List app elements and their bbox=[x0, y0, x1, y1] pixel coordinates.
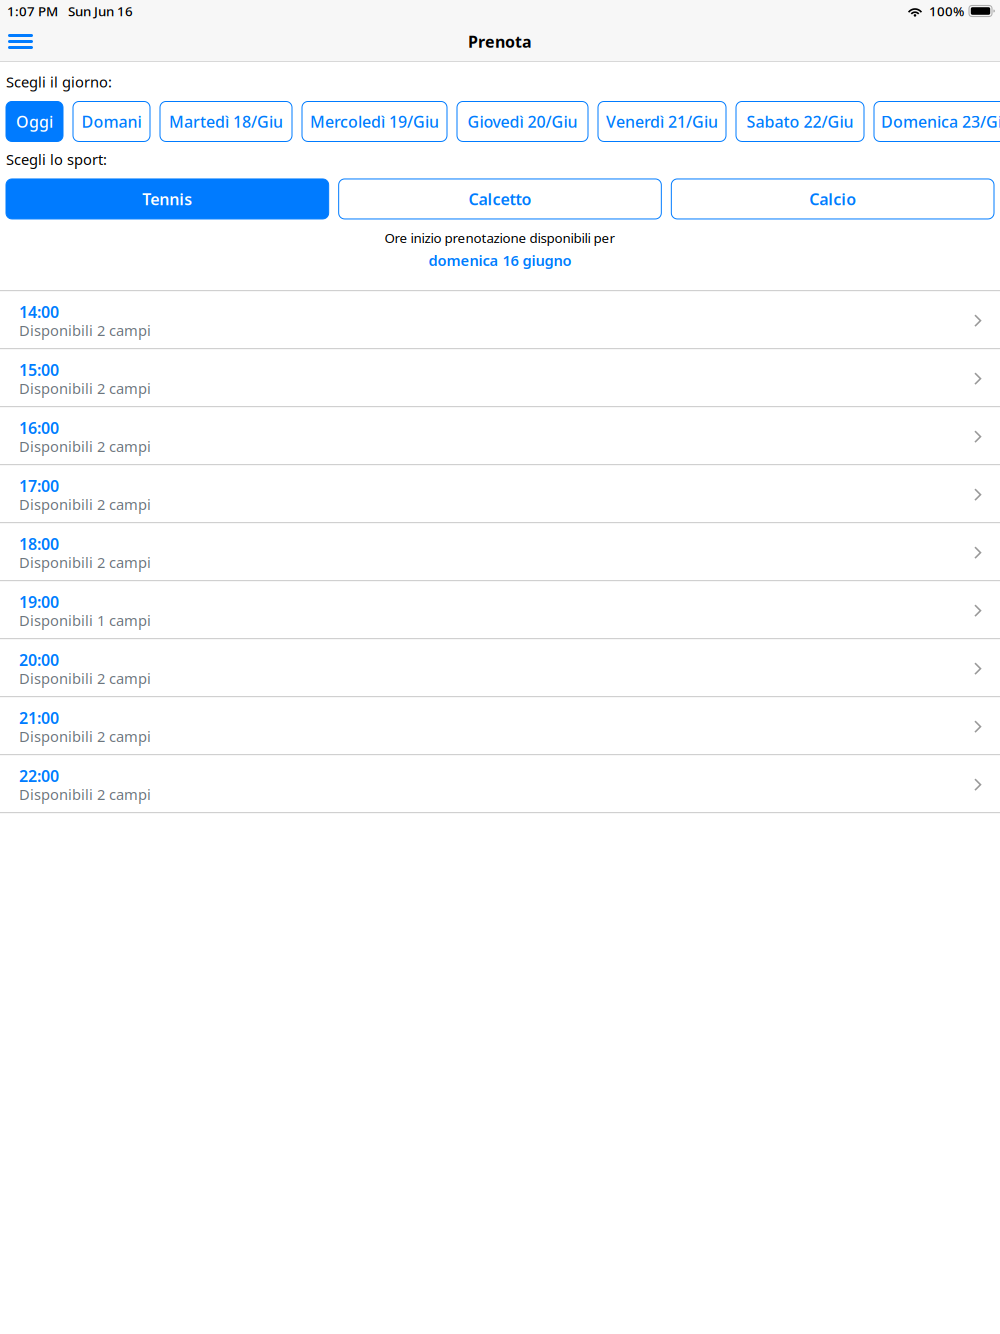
button[interactable]: Calcetto bbox=[339, 179, 661, 219]
button[interactable]: Calcio bbox=[671, 179, 994, 219]
button[interactable]: Venerdì 21/Giu bbox=[598, 101, 726, 141]
staticText: Mercoledì 19/Giu bbox=[310, 111, 439, 132]
button[interactable]: Oggi bbox=[6, 101, 63, 141]
button[interactable]: Giovedì 20/Giu bbox=[457, 101, 588, 141]
staticText: 1:07 PM bbox=[7, 2, 58, 20]
button[interactable]: 17:00 bbox=[0, 465, 1000, 523]
staticText: Scegli lo sport: bbox=[6, 149, 107, 169]
staticText: Disponibili 2 campi bbox=[19, 784, 151, 804]
staticText: 18:00 bbox=[19, 533, 59, 554]
staticText: Disponibili 2 campi bbox=[19, 726, 151, 746]
button[interactable]: Sabato 22/Giu bbox=[736, 101, 864, 141]
staticText: Venerdì 21/Giu bbox=[606, 111, 718, 132]
button[interactable]: 21:00 bbox=[0, 697, 1000, 755]
staticText: Martedì 18/Giu bbox=[169, 111, 283, 132]
staticText: Tennis bbox=[142, 188, 192, 209]
staticText: Scegli il giorno: bbox=[6, 72, 112, 91]
staticText: Disponibili 2 campi bbox=[19, 320, 151, 340]
staticText: Prenota bbox=[468, 31, 532, 52]
button[interactable]: 15:00 bbox=[0, 349, 1000, 407]
staticText: 16:00 bbox=[19, 417, 59, 438]
staticText: Giovedì 20/Giu bbox=[467, 111, 577, 132]
staticText: 15:00 bbox=[19, 359, 59, 380]
staticText: 20:00 bbox=[19, 649, 59, 670]
button[interactable]: 22:00 bbox=[0, 755, 1000, 813]
staticText: Calcio bbox=[809, 188, 856, 209]
staticText: Domani bbox=[81, 111, 141, 132]
staticText: 21:00 bbox=[19, 707, 59, 728]
staticText: 100% bbox=[929, 2, 964, 20]
button[interactable]: 19:00 bbox=[0, 581, 1000, 639]
staticText: Oggi bbox=[16, 111, 53, 132]
staticText: Sabato 22/Giu bbox=[746, 111, 853, 132]
staticText: Calcetto bbox=[468, 188, 531, 209]
button[interactable]: 18:00 bbox=[0, 523, 1000, 581]
staticText: Disponibili 2 campi bbox=[19, 552, 151, 572]
button[interactable]: 16:00 bbox=[0, 407, 1000, 465]
staticText: Disponibili 2 campi bbox=[19, 494, 151, 514]
staticText: 14:00 bbox=[19, 301, 59, 322]
button[interactable]: Domani bbox=[73, 101, 150, 141]
staticText: Ore inizio prenotazione disponibili per bbox=[384, 229, 615, 247]
staticText: 22:00 bbox=[19, 765, 59, 786]
staticText: Sun Jun 16 bbox=[68, 2, 133, 20]
button[interactable]: Menu bbox=[0, 23, 45, 60]
staticText: Disponibili 2 campi bbox=[19, 378, 151, 398]
staticText: Disponibili 2 campi bbox=[19, 668, 151, 688]
staticText: domenica 16 giugno bbox=[428, 251, 571, 270]
staticText: 19:00 bbox=[19, 591, 59, 612]
button[interactable]: 14:00 bbox=[0, 291, 1000, 349]
staticText: Disponibili 1 campi bbox=[19, 610, 151, 630]
button[interactable]: Martedì 18/Giu bbox=[160, 101, 292, 141]
staticText: Domenica 23/Giu bbox=[881, 111, 1000, 132]
staticText: 17:00 bbox=[19, 475, 59, 496]
staticText: Disponibili 2 campi bbox=[19, 436, 151, 456]
button[interactable]: Tennis bbox=[6, 179, 329, 219]
button[interactable]: 20:00 bbox=[0, 639, 1000, 697]
button[interactable]: Mercoledì 19/Giu bbox=[302, 101, 447, 141]
button[interactable]: Domenica 23/Giu bbox=[874, 101, 1000, 141]
